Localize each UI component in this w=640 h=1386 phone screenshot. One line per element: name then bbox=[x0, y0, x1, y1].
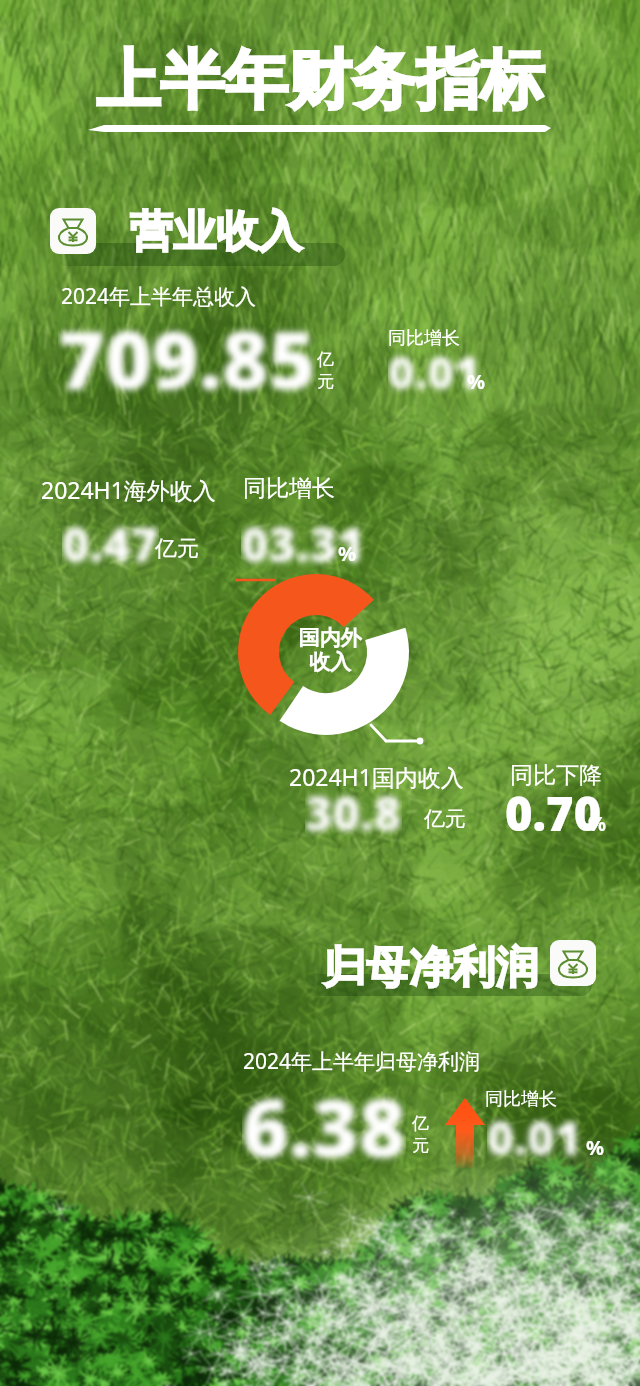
staticText: 亿元 bbox=[155, 535, 199, 563]
button[interactable]: Revenue bbox=[550, 940, 596, 986]
staticText: 30.8 bbox=[305, 781, 402, 845]
staticText: 03.31 bbox=[241, 512, 365, 576]
staticText: 亿 元 bbox=[412, 1113, 429, 1156]
staticText: 0.70 bbox=[505, 781, 602, 845]
staticText: 2024年上半年归母净利润 bbox=[243, 1047, 481, 1076]
staticText: 同比增长 bbox=[388, 327, 460, 350]
staticText: 2024年上半年总收入 bbox=[61, 282, 257, 311]
staticText: 上半年财务指标 bbox=[0, 40, 640, 121]
staticText: 0.47 bbox=[62, 512, 159, 576]
staticText: 6.38 bbox=[242, 1071, 406, 1180]
staticText: 同比增长 bbox=[243, 474, 335, 503]
staticText: 同比下降 bbox=[510, 761, 602, 790]
staticText: 亿 元 bbox=[317, 349, 334, 392]
button[interactable]: Revenue bbox=[50, 208, 96, 254]
staticText: 0.01 bbox=[487, 1106, 582, 1169]
staticText: % bbox=[588, 810, 607, 837]
staticText: 亿元 bbox=[424, 806, 466, 832]
staticText: % bbox=[586, 1134, 605, 1161]
staticText: 0.01 bbox=[388, 341, 481, 402]
staticText: 2024H1海外收入 bbox=[41, 474, 216, 505]
staticText: 同比增长 bbox=[485, 1088, 557, 1111]
staticText: 709.85 bbox=[58, 303, 316, 412]
staticText: 营业收入 bbox=[130, 205, 302, 259]
staticText: 2024H1国内收入 bbox=[289, 761, 464, 792]
staticText: 国内外 收入 bbox=[286, 625, 374, 675]
staticText: % bbox=[338, 540, 357, 567]
staticText: 归母净利润 bbox=[323, 941, 538, 995]
staticText: % bbox=[467, 368, 486, 395]
